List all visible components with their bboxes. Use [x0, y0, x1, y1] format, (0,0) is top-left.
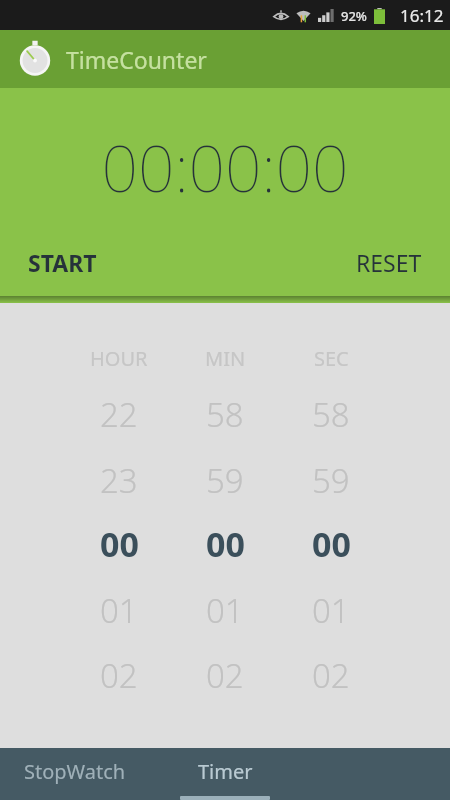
- button[interactable]: 02: [278, 649, 384, 701]
- staticText: StopWatch: [24, 758, 126, 785]
- staticText: 16:12: [400, 4, 444, 27]
- button[interactable]: 59: [172, 454, 278, 506]
- button[interactable]: 59: [278, 454, 384, 506]
- button[interactable]: 01: [278, 584, 384, 636]
- staticText: 00: [206, 521, 245, 567]
- staticText: 02: [100, 653, 138, 698]
- staticText: 22: [100, 392, 138, 437]
- staticText: 58: [312, 392, 350, 437]
- staticText: 00: [100, 521, 139, 567]
- staticText: 02: [206, 653, 244, 698]
- staticText: 59: [312, 458, 350, 503]
- button[interactable]: 00: [66, 518, 172, 570]
- button[interactable]: RESET: [225, 241, 432, 284]
- button[interactable]: 00: [278, 518, 384, 570]
- staticText: 58: [206, 392, 244, 437]
- staticText: 00:00:00: [0, 124, 450, 211]
- staticText: MIN: [205, 345, 246, 372]
- staticText: 02: [312, 653, 350, 698]
- button[interactable]: 02: [66, 649, 172, 701]
- button[interactable]: 58: [278, 388, 384, 440]
- button[interactable]: 01: [172, 584, 278, 636]
- staticText: 59: [206, 458, 244, 503]
- button[interactable]: Timer: [150, 748, 300, 800]
- button[interactable]: 02: [172, 649, 278, 701]
- button[interactable]: 22: [66, 388, 172, 440]
- staticText: 01: [206, 588, 244, 633]
- staticText: 01: [312, 588, 350, 633]
- button[interactable]: StopWatch: [0, 748, 150, 800]
- button[interactable]: 58: [172, 388, 278, 440]
- staticText: TimeCounter: [66, 44, 207, 75]
- button[interactable]: 23: [66, 454, 172, 506]
- other: TimeCounter app icon: [14, 38, 56, 80]
- staticText: 00: [312, 521, 351, 567]
- staticText: 23: [100, 458, 138, 503]
- staticText: 92%: [341, 7, 367, 25]
- staticText: Timer: [198, 758, 253, 785]
- staticText: SEC: [314, 345, 349, 372]
- staticText: HOUR: [90, 345, 148, 372]
- button[interactable]: 00: [172, 518, 278, 570]
- button[interactable]: START: [18, 241, 225, 284]
- staticText: 01: [100, 588, 138, 633]
- staticText: START: [28, 247, 97, 278]
- button[interactable]: 01: [66, 584, 172, 636]
- staticText: RESET: [356, 247, 422, 278]
